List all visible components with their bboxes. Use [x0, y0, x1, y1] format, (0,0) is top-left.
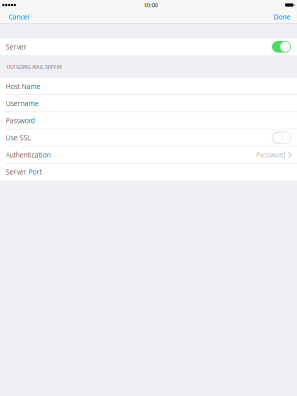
button[interactable]: Password	[0, 112, 297, 129]
button[interactable]: Cancel	[9, 12, 30, 21]
staticText: Authentication	[6, 150, 51, 159]
staticText: Server Port	[6, 167, 42, 176]
staticText: Done	[273, 12, 290, 21]
button[interactable]: Username	[0, 95, 297, 112]
staticText: Host Name	[6, 82, 41, 91]
staticText: Cancel	[9, 12, 30, 21]
staticText: Server	[6, 42, 27, 51]
staticText: Use SSL	[6, 133, 31, 142]
button[interactable]: Done	[273, 12, 290, 21]
staticText: Password	[6, 116, 35, 125]
staticText: Username	[6, 99, 39, 108]
staticText: Password	[256, 150, 285, 159]
button[interactable]: Use SSL	[0, 129, 297, 146]
button[interactable]: Authentication	[0, 146, 297, 163]
button[interactable]: Server	[0, 38, 297, 55]
button[interactable]: Host Name	[0, 78, 297, 95]
staticText: 10:00	[143, 1, 157, 9]
staticText: OUTGOING MAIL SERVER	[7, 64, 62, 70]
button[interactable]: Server Port	[0, 164, 297, 180]
